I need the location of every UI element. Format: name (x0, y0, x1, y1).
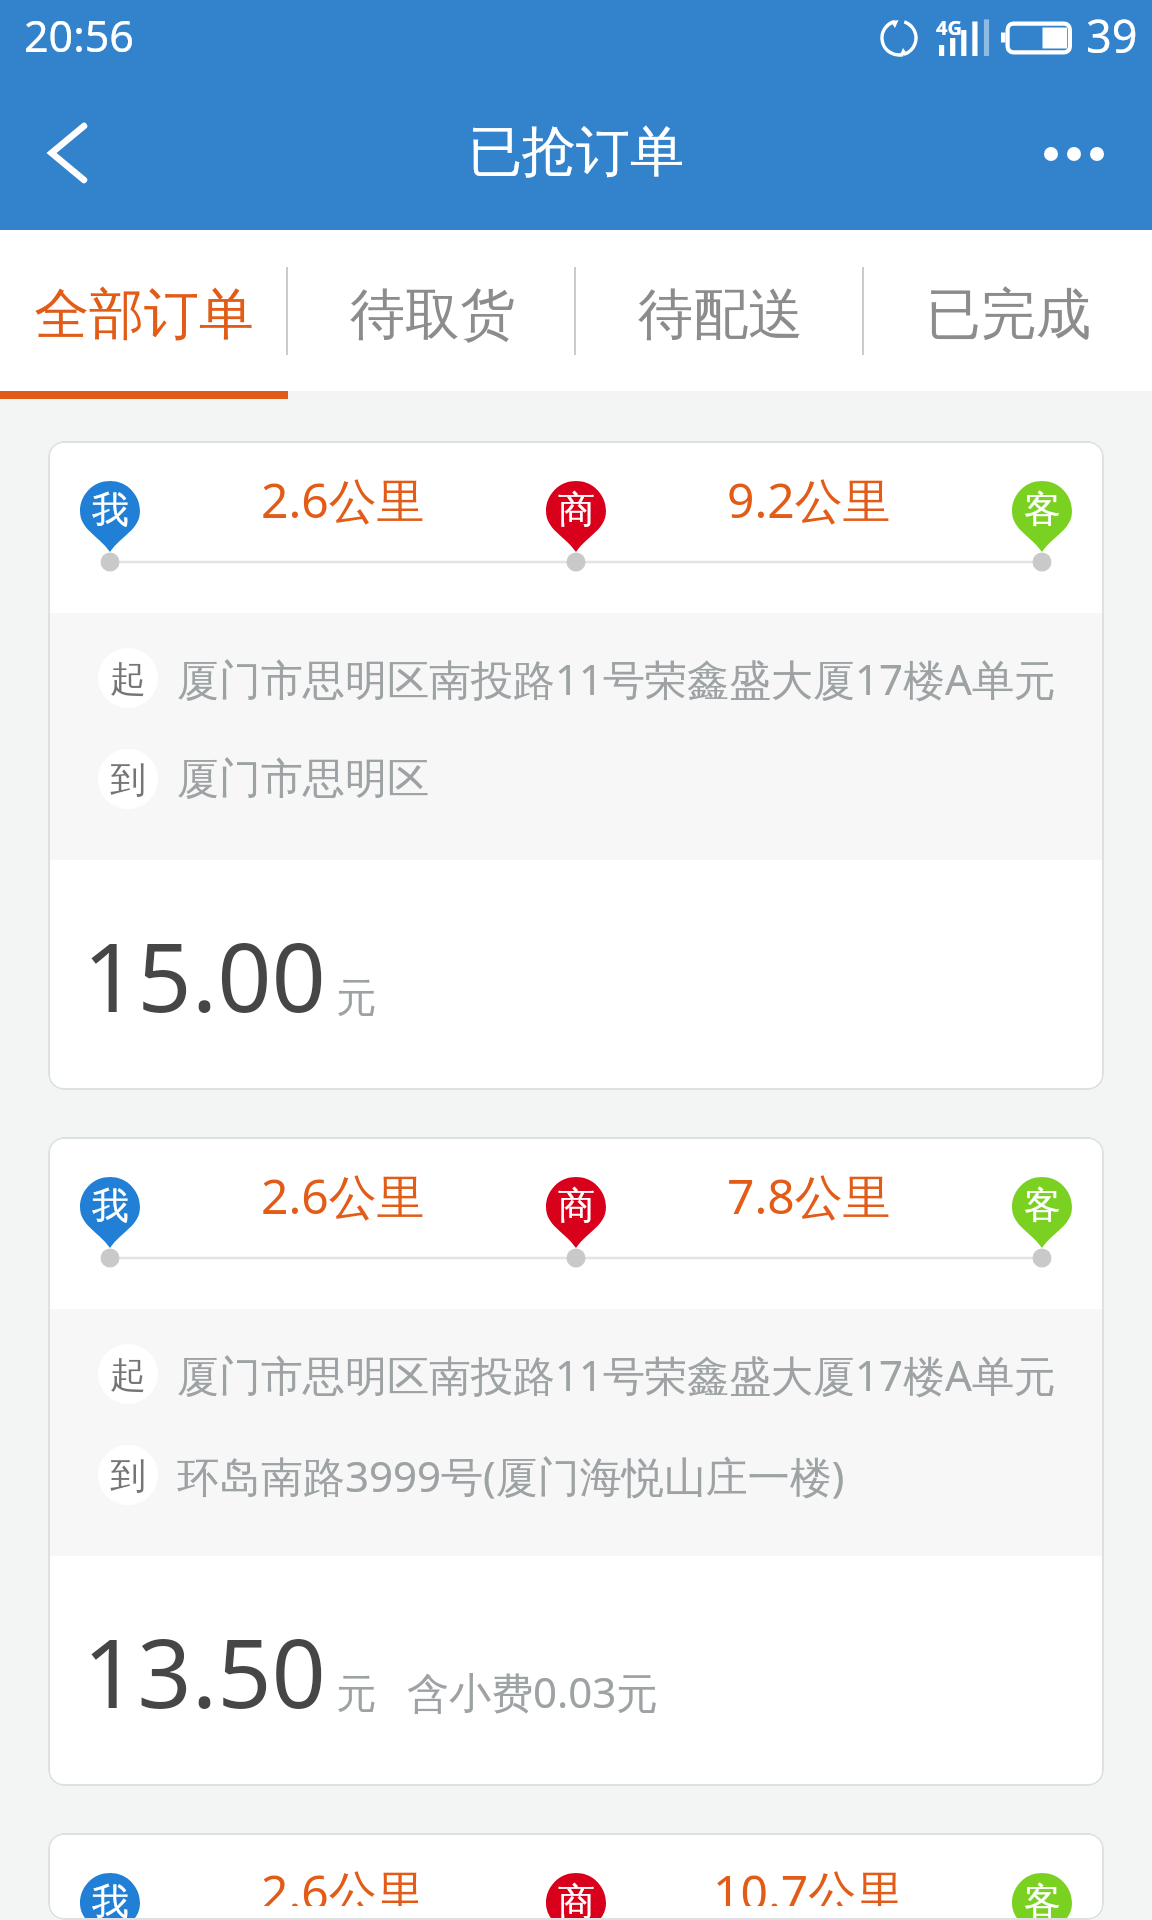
staticText: 10.7公里 (713, 1859, 905, 1906)
button[interactable]: 待取货 (288, 230, 576, 391)
staticText: 起 (110, 656, 146, 701)
button[interactable]: 待配送 (576, 230, 864, 391)
staticText: 已完成 (926, 280, 1091, 349)
staticText: 环岛南路3999号(厦门海悦山庄一楼) (177, 1447, 845, 1504)
button[interactable]: 已完成 (864, 230, 1152, 391)
staticText: 含小费0.03元 (407, 1663, 659, 1720)
staticText: 商 (558, 486, 595, 533)
button[interactable]: 全部订单 (0, 230, 288, 391)
staticText: 我 (92, 1182, 129, 1229)
staticText: 厦门市思明区 (177, 753, 429, 806)
staticText: 客 (1024, 1878, 1061, 1920)
staticText: 商 (558, 1182, 595, 1229)
staticText: 15.00 (83, 910, 326, 1039)
staticText: 待取货 (350, 280, 515, 349)
staticText: 待配送 (638, 280, 803, 349)
button[interactable]: 我 (48, 1137, 1104, 1786)
staticText: 元 (336, 1668, 376, 1718)
staticText: 9.2公里 (727, 467, 891, 527)
staticText: 厦门市思明区南投路11号荣鑫盛大厦17楼A单元 (177, 650, 1056, 707)
staticText: 7.8公里 (727, 1163, 891, 1223)
button[interactable]: More options (1012, 88, 1152, 230)
staticText: 已抢订单 (468, 118, 684, 186)
staticText: 全部订单 (34, 280, 254, 349)
staticText: 2.6公里 (261, 1163, 425, 1223)
button[interactable]: Back (0, 88, 132, 230)
staticText: 厦门市思明区南投路11号荣鑫盛大厦17楼A单元 (177, 1346, 1056, 1403)
staticText: 20:56 (24, 6, 134, 65)
staticText: 13.50 (83, 1606, 326, 1735)
staticText: 元 (336, 972, 376, 1022)
staticText: 我 (92, 486, 129, 533)
staticText: 客 (1024, 486, 1061, 533)
staticText: 2.6公里 (261, 467, 425, 527)
staticText: 起 (110, 1352, 146, 1397)
staticText: 4G (936, 14, 962, 41)
staticText: 2.6公里 (261, 1859, 425, 1906)
button[interactable]: 我 (48, 441, 1104, 1090)
button[interactable]: 我 (48, 1833, 1104, 1920)
staticText: 到 (110, 757, 146, 802)
staticText: 客 (1024, 1182, 1061, 1229)
staticText: 39 (1086, 5, 1138, 66)
staticText: 到 (110, 1453, 146, 1498)
staticText: 商 (558, 1878, 595, 1920)
staticText: 我 (92, 1878, 129, 1920)
